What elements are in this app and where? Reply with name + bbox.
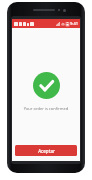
staticText: Your order is confirmed: [12, 106, 80, 111]
button[interactable]: Aceptar: [15, 145, 77, 156]
staticText: Aceptar: [38, 148, 55, 154]
staticText: 9:41: [70, 21, 78, 26]
